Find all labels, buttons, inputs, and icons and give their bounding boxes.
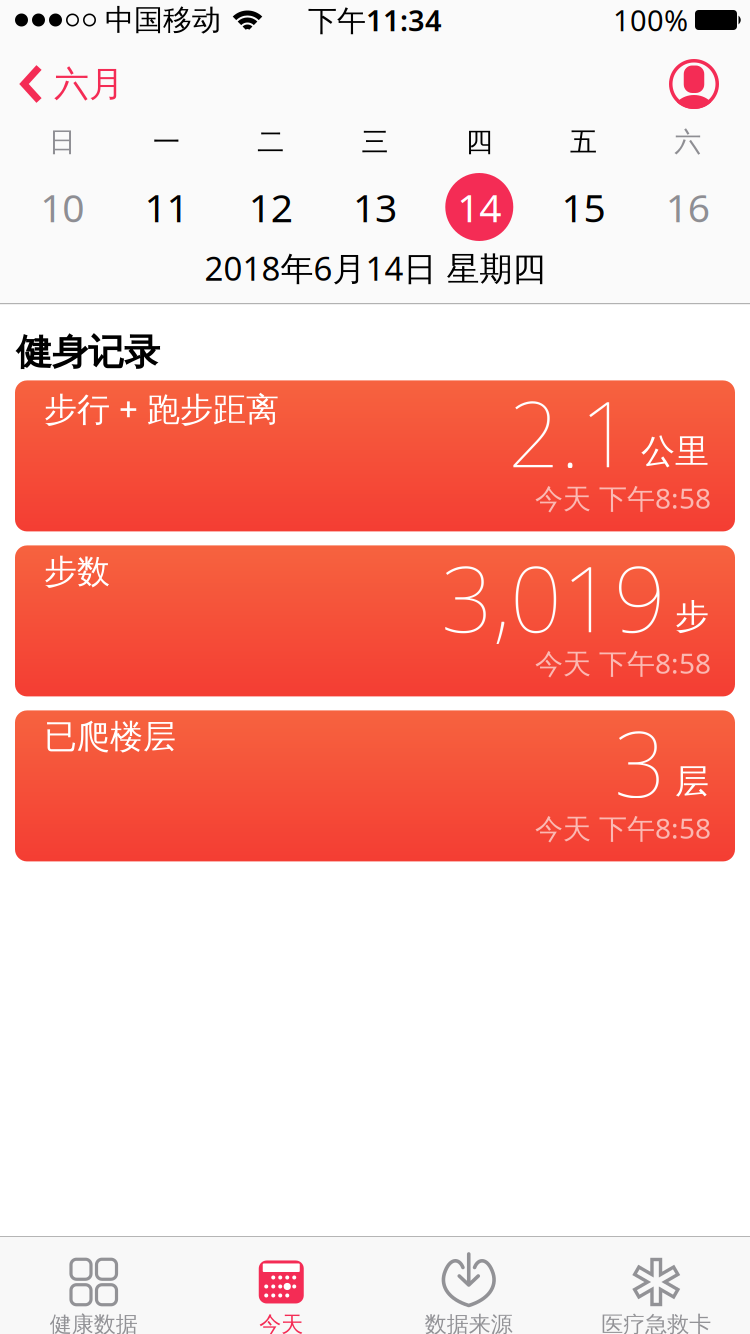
staticText: 一 (153, 125, 180, 159)
staticText: 16 (666, 181, 710, 233)
staticText: 10 (40, 181, 84, 233)
button[interactable] (0, 59, 750, 109)
button[interactable]: 今天 (187, 1236, 375, 1334)
button[interactable]: 12 (219, 181, 323, 233)
staticText: 14 (457, 181, 501, 233)
button[interactable]: 步数 (15, 545, 735, 696)
button[interactable]: 15 (531, 181, 636, 233)
button[interactable]: 13 (323, 181, 427, 233)
staticText: 2018年6月14日 星期四 (204, 246, 545, 290)
staticText: 六 (674, 125, 701, 159)
button[interactable]: 10 (10, 181, 114, 233)
staticText: 15 (562, 181, 606, 233)
staticText: 3,019 (441, 536, 666, 657)
staticText: 健身记录 (16, 330, 160, 374)
button[interactable]: 健康数据 (0, 1236, 187, 1334)
staticText: 六月 (54, 62, 124, 105)
staticText: 数据来源 (425, 1311, 513, 1334)
staticText: 日 (49, 125, 76, 159)
staticText: 中国移动 (105, 2, 221, 38)
staticText: 今天 (259, 1311, 303, 1334)
staticText: 今天 下午8:58 (535, 809, 711, 847)
staticText: 12 (249, 181, 293, 233)
staticText: 步 (675, 595, 709, 637)
staticText: 五 (570, 125, 597, 159)
staticText: 步数 (44, 551, 110, 592)
staticText: 100% (613, 1, 688, 39)
button[interactable]: 六月 (0, 62, 750, 105)
staticText: 二 (257, 125, 284, 159)
staticText: 11 (144, 181, 188, 233)
button[interactable]: 已爬楼层 (15, 710, 735, 861)
staticText: 步行 + 跑步距离 (44, 386, 279, 430)
staticText: 今天 下午8:58 (535, 479, 711, 517)
staticText: 今天 下午8:58 (535, 644, 711, 682)
button[interactable]: 11 (114, 181, 219, 233)
staticText: 13 (353, 181, 397, 233)
button[interactable]: 14 (427, 173, 531, 241)
staticText: 2.1 (508, 371, 632, 492)
button[interactable]: 数据来源 (375, 1236, 562, 1334)
staticText: 三 (361, 125, 388, 159)
button[interactable]: 16 (636, 181, 740, 233)
staticText: 健康数据 (50, 1311, 138, 1334)
staticText: 下午11:34 (308, 1, 442, 39)
staticText: 医疗急救卡 (601, 1311, 711, 1334)
button[interactable]: 步行 + 跑步距离 (15, 380, 735, 531)
staticText: 层 (675, 760, 709, 802)
staticText: 四 (466, 125, 493, 159)
button[interactable]: 医疗急救卡 (562, 1236, 750, 1334)
staticText: 已爬楼层 (44, 716, 176, 757)
staticText: 3 (614, 701, 666, 822)
staticText: 公里 (641, 430, 709, 472)
